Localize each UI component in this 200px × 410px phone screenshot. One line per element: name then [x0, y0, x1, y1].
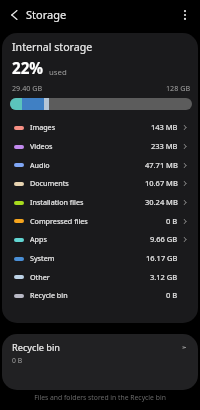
- button[interactable]: Apps: [2, 230, 198, 249]
- button[interactable]: Documents: [2, 174, 198, 193]
- staticText: 3.12 GB: [150, 272, 178, 282]
- staticText: 143 MB: [151, 122, 178, 132]
- button[interactable]: Recycle bin: [2, 286, 198, 305]
- staticText: 30.24 MB: [145, 197, 178, 207]
- button[interactable]: Installation files: [2, 193, 198, 212]
- staticText: 128 GB: [166, 83, 191, 93]
- staticText: Compressed files: [30, 216, 88, 226]
- staticText: 29.40 GB: [12, 83, 43, 93]
- staticText: 0 B: [166, 216, 178, 226]
- staticText: Audio: [30, 160, 50, 170]
- button[interactable]: System: [2, 249, 198, 268]
- staticText: 233 MB: [151, 141, 178, 151]
- button[interactable]: Compressed files: [2, 212, 198, 230]
- staticText: Files and folders stored in the Recycle …: [0, 393, 200, 402]
- staticText: 0 B: [12, 356, 23, 365]
- button[interactable]: Audio: [2, 156, 198, 174]
- staticText: 9.66 GB: [150, 234, 178, 244]
- staticText: 16.17 GB: [146, 253, 178, 263]
- staticText: Other: [30, 272, 50, 282]
- staticText: 47.71 MB: [145, 160, 178, 170]
- staticText: used: [49, 67, 67, 78]
- button[interactable]: Recycle bin: [2, 334, 198, 390]
- button[interactable]: Videos: [2, 137, 198, 156]
- staticText: Installation files: [30, 197, 84, 207]
- button[interactable]: Images: [2, 118, 198, 137]
- staticText: 0 B: [166, 290, 178, 300]
- staticText: Videos: [30, 141, 53, 151]
- staticText: Recycle bin: [30, 290, 68, 300]
- staticText: Images: [30, 122, 56, 132]
- staticText: 22%: [12, 58, 44, 79]
- staticText: Recycle bin: [12, 341, 61, 354]
- staticText: 10.67 MB: [145, 178, 178, 188]
- button[interactable]: Other: [2, 268, 198, 286]
- staticText: Documents: [30, 178, 69, 188]
- staticText: Apps: [30, 234, 47, 244]
- button[interactable]: More options: [170, 1, 200, 29]
- staticText: Storage: [26, 7, 67, 22]
- staticText: System: [30, 253, 55, 263]
- staticText: Internal storage: [12, 40, 93, 54]
- button[interactable]: Back: [2, 1, 26, 29]
